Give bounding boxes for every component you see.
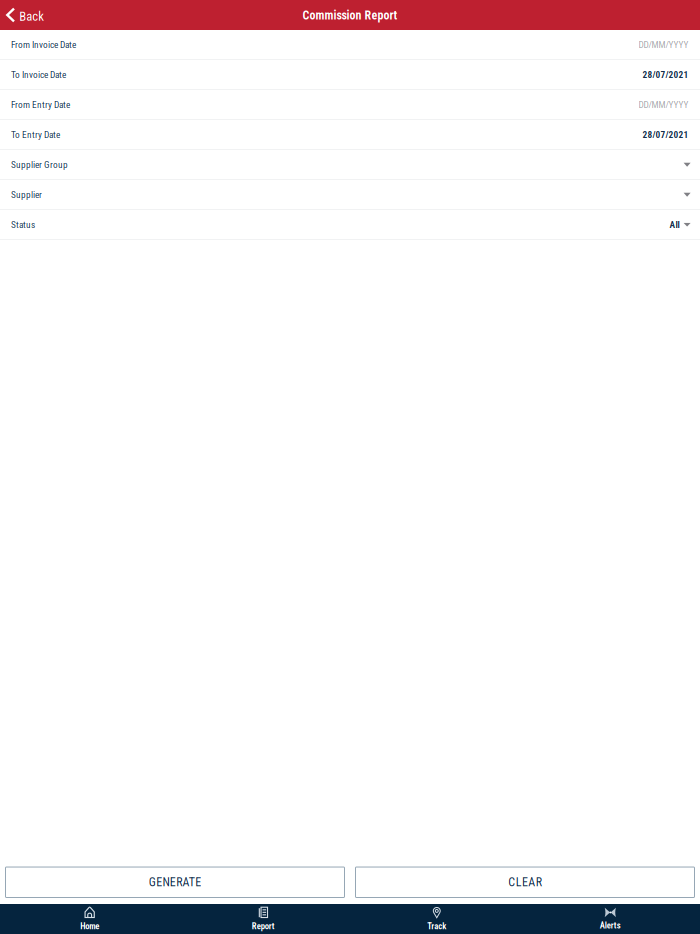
staticText: Supplier <box>11 189 42 200</box>
staticText: Back <box>19 9 44 24</box>
staticText: All <box>670 219 680 230</box>
staticText: Status <box>11 219 35 230</box>
staticText: DD/MM/YYYY <box>639 99 689 110</box>
button[interactable]: From Entry Date <box>0 90 700 120</box>
staticText: Track <box>427 921 446 931</box>
staticText: CLEAR <box>508 875 542 889</box>
button[interactable]: Status <box>0 210 700 240</box>
staticText: To Invoice Date <box>11 69 66 80</box>
button[interactable]: To Invoice Date <box>0 60 700 90</box>
staticText: To Entry Date <box>11 129 60 140</box>
staticText: Report <box>252 921 275 931</box>
button[interactable]: Supplier Group <box>0 150 700 180</box>
button[interactable]: Alerts <box>524 904 697 934</box>
staticText: Supplier Group <box>11 159 68 170</box>
staticText: Alerts <box>600 920 621 931</box>
button[interactable]: CLEAR <box>355 867 694 897</box>
staticText: 28/07/2021 <box>643 129 689 140</box>
button[interactable]: GENERATE <box>5 867 344 897</box>
button[interactable]: Supplier <box>0 180 700 210</box>
staticText: GENERATE <box>149 875 201 889</box>
button[interactable]: Home <box>3 904 176 934</box>
staticText: Home <box>80 921 99 931</box>
staticText: DD/MM/YYYY <box>639 39 689 50</box>
staticText: 28/07/2021 <box>643 69 689 80</box>
staticText: From Entry Date <box>11 99 70 110</box>
button[interactable]: Back <box>0 0 52 30</box>
button[interactable]: Report <box>176 904 350 934</box>
staticText: Commission Report <box>302 8 397 23</box>
staticText: From Invoice Date <box>11 39 76 50</box>
button[interactable]: Track <box>350 904 524 934</box>
button[interactable]: From Invoice Date <box>0 30 700 60</box>
button[interactable]: To Entry Date <box>0 120 700 150</box>
